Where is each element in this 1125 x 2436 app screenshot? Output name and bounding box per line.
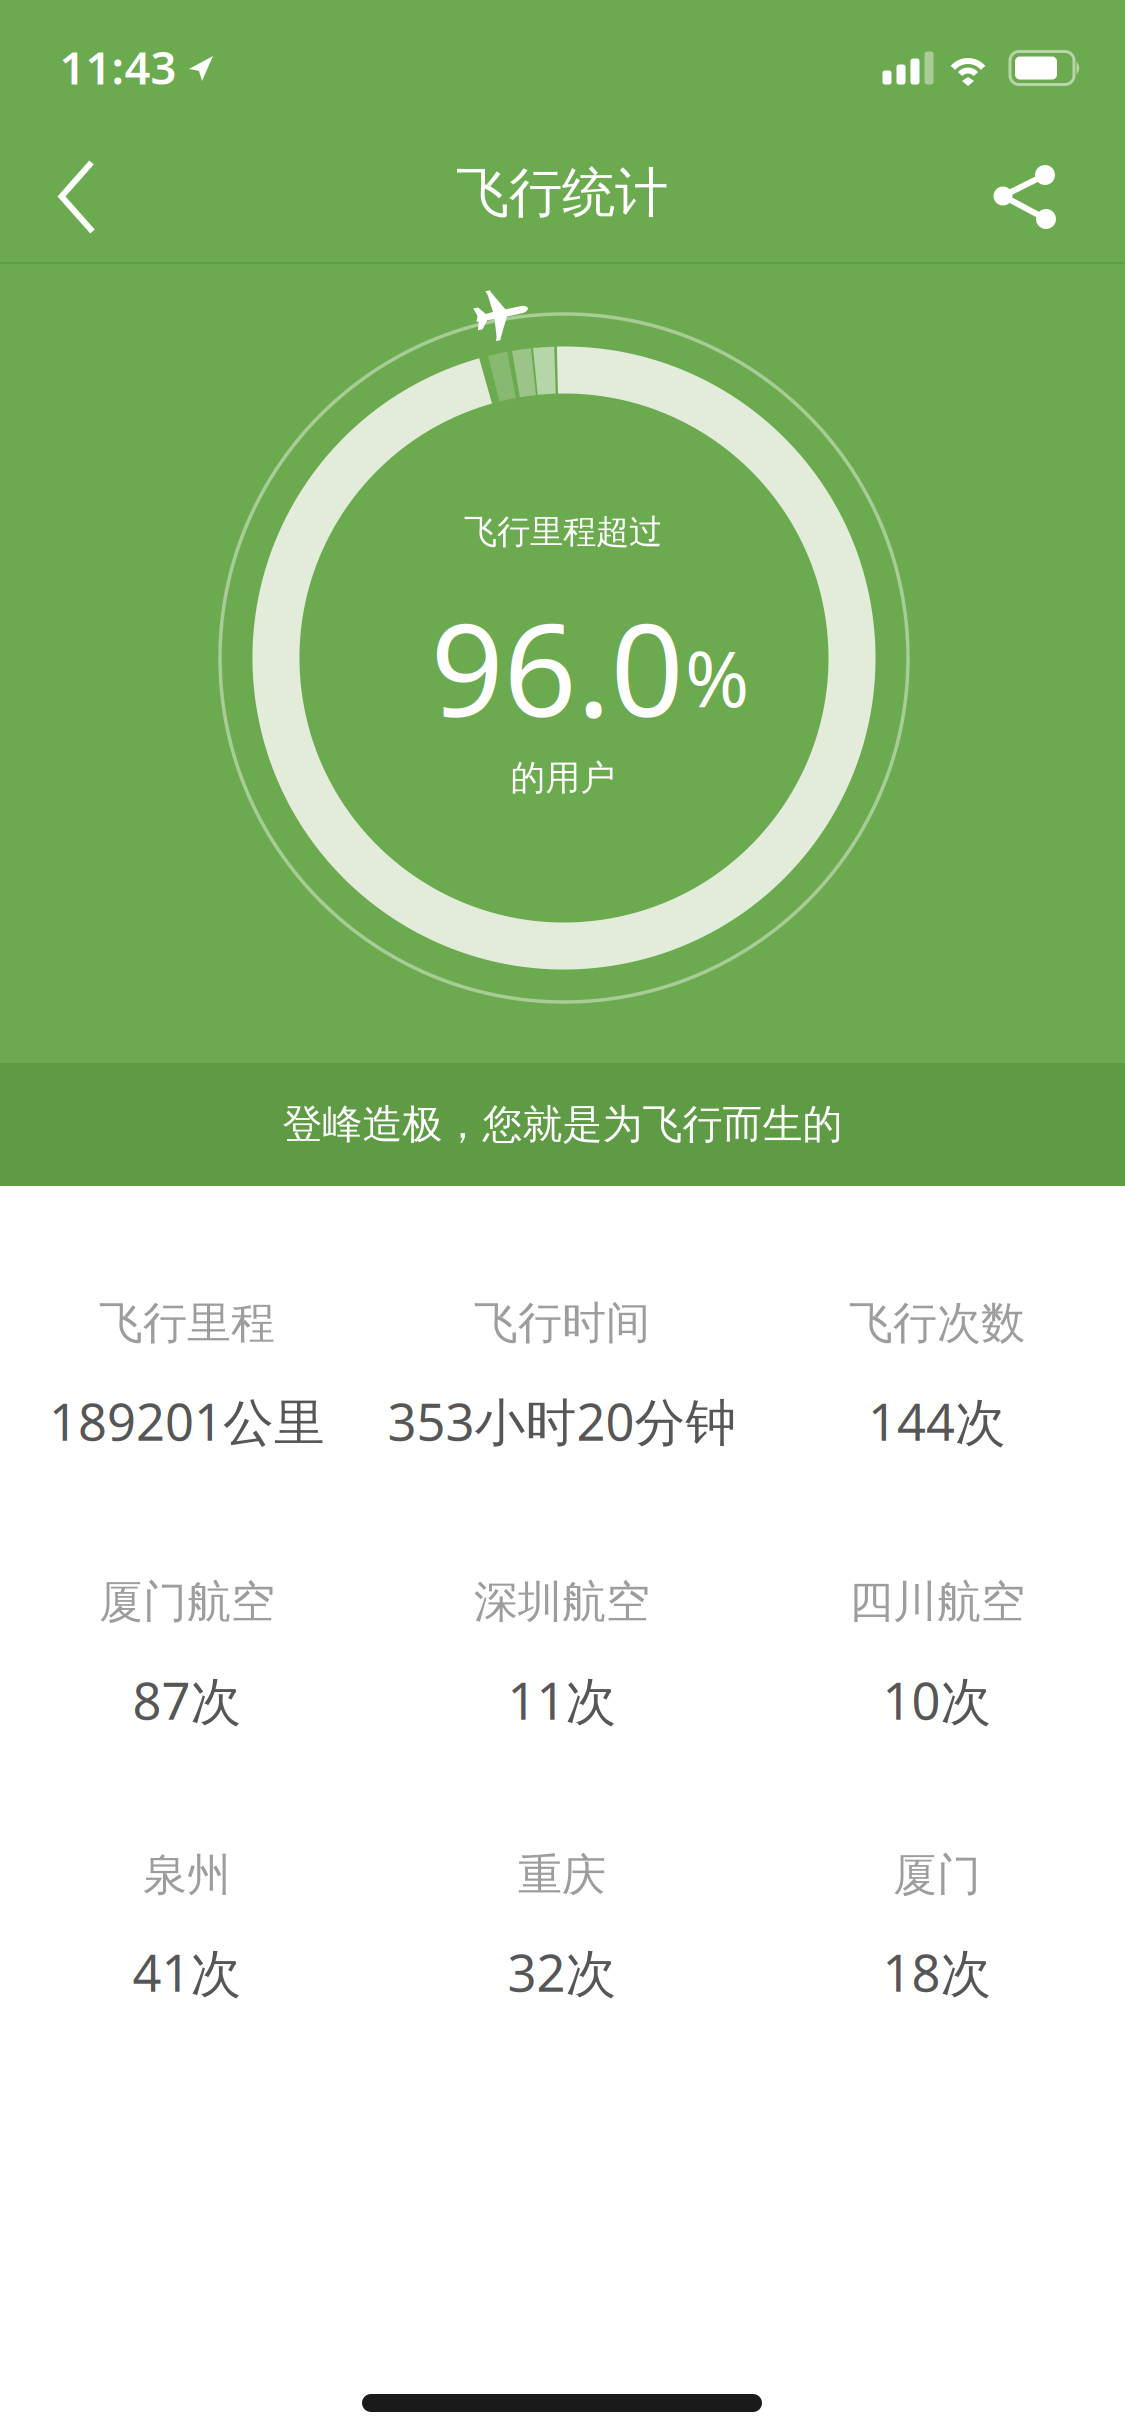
staticText: 重庆 [518, 1848, 606, 1902]
staticText: 飞行里程超过 [464, 511, 662, 552]
button[interactable]: 返回 [32, 142, 121, 251]
staticText: 11:43 [59, 37, 176, 97]
staticText: 泉州 [143, 1848, 231, 1902]
staticText: 144次 [868, 1387, 1006, 1455]
staticText: 353小时20分钟 [387, 1387, 736, 1455]
staticText: 11次 [507, 1666, 616, 1734]
staticText: 厦门 [893, 1848, 981, 1902]
staticText: 96.0 [430, 582, 683, 752]
staticText: 10次 [882, 1666, 991, 1734]
staticText: 的用户 [510, 757, 615, 799]
staticText: 登峰造极，您就是为飞行而生的 [282, 1100, 842, 1149]
staticText: 飞行统计 [456, 160, 668, 226]
staticText: 41次 [132, 1938, 241, 2006]
staticText: 飞行次数 [849, 1296, 1025, 1350]
button[interactable]: 分享 [979, 151, 1071, 243]
staticText: 87次 [132, 1666, 241, 1734]
staticText: 厦门航空 [99, 1575, 275, 1629]
staticText: 深圳航空 [474, 1575, 650, 1629]
staticText: % [685, 626, 749, 728]
staticText: 32次 [507, 1938, 616, 2006]
staticText: 飞行里程 [99, 1296, 275, 1350]
staticText: 四川航空 [849, 1575, 1025, 1629]
staticText: 18次 [882, 1938, 991, 2006]
staticText: 飞行时间 [474, 1296, 650, 1350]
staticText: 189201公里 [49, 1387, 325, 1455]
